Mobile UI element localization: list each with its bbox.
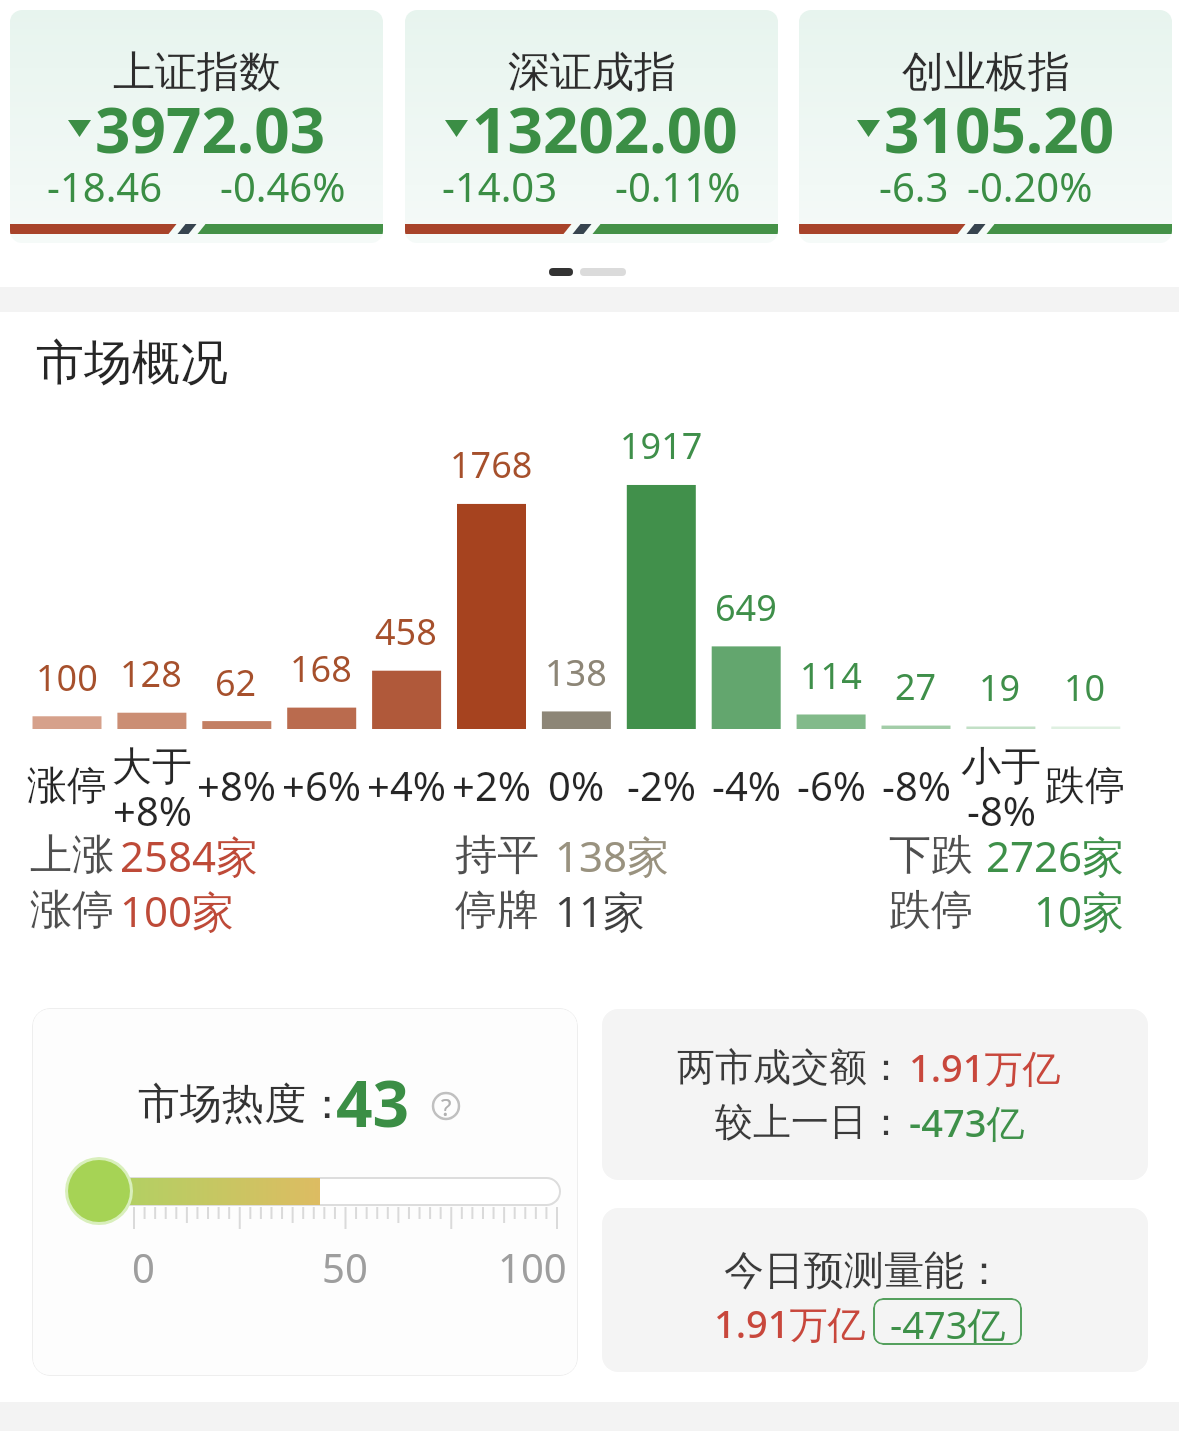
staticText: 深证成指 [508,46,676,99]
staticText: -473亿 [890,1298,1006,1345]
button[interactable]: 上证指数 [10,10,383,243]
staticText: -0.46% [220,159,346,213]
staticText: +4% [367,758,446,812]
staticText: 649 [715,583,777,632]
staticText: 1917 [620,421,703,470]
staticText: 43 [336,1059,410,1146]
staticText: 涨停 [30,884,114,937]
staticText: 较上一日： [715,1098,905,1146]
staticText: +6% [282,758,361,812]
staticText: +8% [197,758,276,812]
staticText: 2726家 [986,827,1125,884]
staticText: 大于 [112,741,192,791]
staticText: 138 [545,648,607,697]
staticText: 138家 [555,827,670,884]
staticText: ? [441,1090,452,1123]
staticText: 0% [548,758,605,812]
staticText: -6.3 [879,159,949,213]
button[interactable]: 深证成指 [405,10,778,243]
staticText: 50 [322,1240,368,1294]
staticText: 两市成交额： [677,1043,905,1091]
staticText: -473亿 [909,1096,1025,1148]
staticText: 0 [132,1240,155,1294]
staticText: 今日预测量能： [724,1245,1004,1295]
staticText: 上涨 [30,829,114,882]
staticText: 11家 [555,882,646,939]
button[interactable] [602,1208,1148,1372]
staticText: +2% [452,758,531,812]
staticText: -4% [712,758,781,812]
staticText: 168 [290,644,352,693]
staticText: 100 [498,1240,567,1294]
staticText: 3105.20 [884,87,1115,167]
staticText: 持平 [455,829,539,882]
staticText: 13202.00 [472,87,738,167]
staticText: 128 [120,649,182,698]
staticText: 10 [1064,663,1106,712]
staticText: -0.11% [615,159,741,213]
staticText: 100家 [120,882,235,939]
staticText: 27 [895,662,937,711]
staticText: -6% [797,758,866,812]
staticText: 下跌 [889,829,973,882]
staticText: 跌停 [1045,760,1125,810]
staticText: -8% [967,783,1036,837]
staticText: 1.91万亿 [909,1041,1061,1093]
staticText: 62 [215,658,257,707]
staticText: 跌停 [889,884,973,937]
staticText: -14.03 [442,159,558,213]
staticText: 上证指数 [113,46,281,99]
staticText: 小于 [961,741,1041,791]
button[interactable] [602,1009,1148,1180]
staticText: +8% [113,783,192,837]
staticText: 2584家 [120,827,259,884]
staticText: 创业板指 [902,46,1070,99]
staticText: 100 [36,653,98,702]
staticText: 10家 [1034,882,1125,939]
staticText: 458 [375,607,437,656]
button[interactable]: -473亿 [873,1298,1022,1345]
button[interactable]: 创业板指 [799,10,1172,243]
staticText: 3972.03 [95,87,326,167]
staticText: -2% [627,758,696,812]
staticText: 1768 [450,440,533,489]
staticText: 市场概况 [36,333,228,393]
staticText: -0.20% [967,159,1093,213]
staticText: 涨停 [27,760,107,810]
staticText: 停牌 [455,884,539,937]
staticText: 114 [800,651,862,700]
staticText: 1.91万亿 [714,1297,866,1349]
staticText: 市场热度： [138,1078,348,1131]
staticText: -18.46 [47,159,163,213]
staticText: -8% [882,758,951,812]
button[interactable] [32,1008,578,1376]
staticText: 19 [979,663,1021,712]
